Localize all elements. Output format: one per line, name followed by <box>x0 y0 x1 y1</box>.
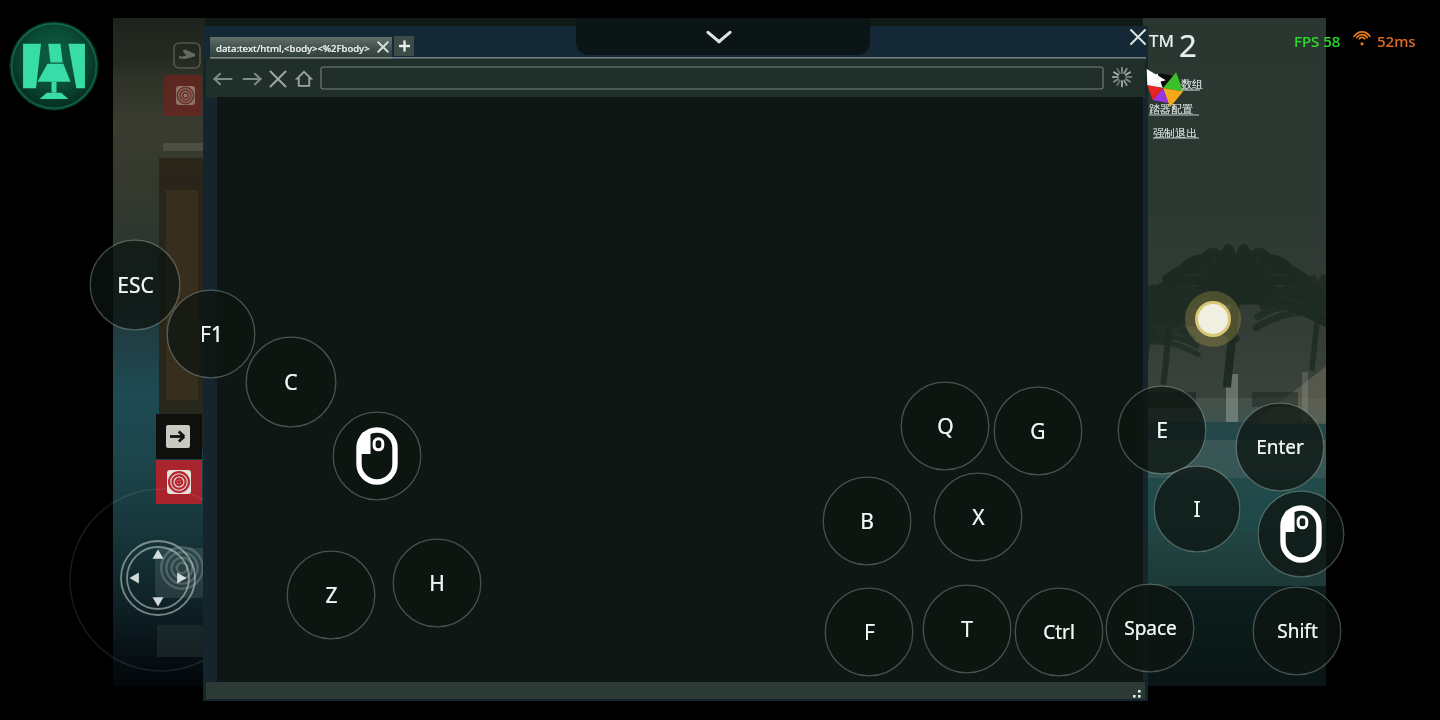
staticText: C <box>284 368 298 397</box>
button[interactable]: Space <box>1105 583 1195 673</box>
staticText: T <box>961 615 973 644</box>
staticText: 2 <box>1179 24 1197 66</box>
button[interactable]: Enter <box>1235 402 1325 492</box>
button[interactable]: New tab <box>394 36 414 56</box>
button[interactable]: Address bar <box>321 67 1103 89</box>
staticText: F <box>864 618 875 647</box>
button[interactable]: ESC <box>89 239 181 331</box>
staticText: F1 <box>200 320 223 349</box>
staticText: Z <box>325 581 338 610</box>
button[interactable]: Shift <box>1252 586 1342 676</box>
staticText: FPS 58 <box>1294 31 1341 51</box>
button[interactable]: Close window <box>1126 26 1148 48</box>
staticText: TM <box>1149 29 1174 52</box>
staticText: G <box>1030 417 1046 446</box>
button[interactable]: C <box>245 336 337 428</box>
button[interactable]: F1 <box>166 289 256 379</box>
button[interactable]: 强制退出 <box>1153 126 1197 140</box>
button[interactable]: App menu <box>9 21 99 111</box>
staticText: data:text/html,<body><%2Fbody> <box>216 42 370 55</box>
button[interactable]: Mouse click <box>332 411 422 501</box>
button[interactable]: Show status bar <box>576 18 870 55</box>
button[interactable]: Back <box>211 63 237 95</box>
button[interactable]: I <box>1153 465 1241 553</box>
staticText: I <box>1193 495 1201 524</box>
staticText: Space <box>1124 615 1177 641</box>
staticText: Ctrl <box>1043 619 1075 645</box>
staticText: 数组 <box>1181 77 1203 91</box>
button[interactable]: Colour picker <box>1146 72 1182 106</box>
button[interactable]: F <box>824 587 914 677</box>
staticText: B <box>860 507 874 536</box>
button[interactable]: Q <box>900 381 990 471</box>
staticText: 踏器配置 <box>1149 102 1193 116</box>
staticText: Enter <box>1256 434 1304 460</box>
staticText: Shift <box>1277 618 1318 644</box>
button[interactable]: 数组 <box>1181 77 1203 91</box>
button[interactable]: 踏器配置 <box>1149 102 1193 116</box>
staticText: ESC <box>117 271 154 300</box>
button[interactable]: X <box>933 472 1023 562</box>
staticText: 52ms <box>1377 31 1416 51</box>
staticText: E <box>1156 416 1168 445</box>
button[interactable]: Home <box>291 63 317 95</box>
button[interactable]: T <box>922 584 1012 674</box>
button[interactable]: H <box>392 538 482 628</box>
button[interactable]: E <box>1117 385 1207 475</box>
button[interactable]: Mouse click <box>1257 490 1345 578</box>
button[interactable]: G <box>993 386 1083 476</box>
staticText: X <box>972 503 985 532</box>
button[interactable]: Stop <box>265 63 291 95</box>
staticText: 强制退出 <box>1153 126 1197 140</box>
staticText: H <box>429 569 445 598</box>
button[interactable]: B <box>822 476 912 566</box>
button[interactable]: Forward <box>239 63 265 95</box>
button[interactable]: Z <box>286 550 376 640</box>
staticText: Q <box>937 412 954 441</box>
button[interactable]: data:text/html,<body><%2Fbody> <box>210 37 392 59</box>
button[interactable]: Ctrl <box>1014 587 1104 677</box>
button[interactable]: Close tab <box>376 39 392 57</box>
